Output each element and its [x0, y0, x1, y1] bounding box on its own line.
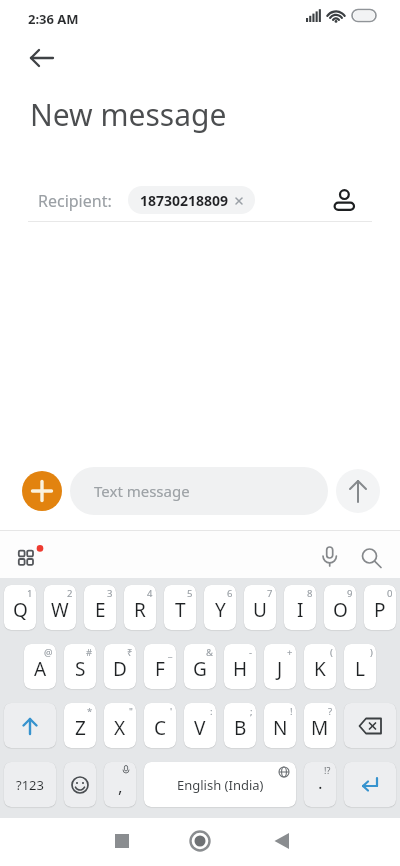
button[interactable]: X — [104, 703, 136, 748]
staticText: L — [355, 656, 365, 682]
button[interactable]: R — [124, 585, 156, 630]
staticText: C — [154, 715, 167, 741]
button[interactable]: A — [24, 644, 56, 689]
staticText: ) — [370, 646, 373, 659]
button[interactable]: T — [164, 585, 196, 630]
button[interactable]: English (India) — [144, 762, 296, 807]
button[interactable] — [322, 543, 348, 569]
staticText: : — [210, 705, 213, 718]
staticText: A — [34, 656, 47, 682]
staticText: U — [253, 597, 267, 623]
staticText: . — [318, 771, 323, 794]
button[interactable] — [4, 703, 56, 748]
staticText: _ — [168, 646, 173, 659]
button[interactable]: , — [104, 762, 136, 807]
button[interactable] — [359, 545, 385, 571]
button[interactable] — [268, 827, 296, 855]
button[interactable]: S — [64, 644, 96, 689]
staticText: 2 — [67, 587, 73, 600]
button[interactable]: K — [304, 644, 336, 689]
button[interactable]: B — [224, 703, 256, 748]
staticText: ? — [328, 705, 333, 718]
staticText: 8 — [307, 587, 313, 600]
staticText: Y — [215, 597, 226, 623]
staticText: 6 — [227, 587, 233, 600]
button[interactable]: I — [284, 585, 316, 630]
button[interactable] — [64, 762, 96, 807]
button[interactable]: C — [144, 703, 176, 748]
staticText: I — [297, 597, 304, 623]
staticText: P — [374, 597, 386, 623]
staticText: 2:36 AM — [28, 10, 79, 28]
staticText: N — [273, 715, 288, 741]
staticText: D — [113, 656, 127, 682]
staticText: ( — [330, 646, 333, 659]
staticText: B — [234, 715, 247, 741]
staticText: J — [277, 656, 283, 682]
staticText: F — [155, 656, 165, 682]
button[interactable]: N — [264, 703, 296, 748]
button[interactable] — [22, 40, 62, 80]
staticText: W — [51, 597, 69, 623]
staticText: " — [129, 705, 133, 718]
staticText: Z — [75, 715, 86, 741]
staticText: ; — [250, 705, 253, 718]
button[interactable]: G — [184, 644, 216, 689]
button[interactable]: . — [304, 762, 336, 807]
button[interactable] — [332, 186, 358, 212]
button[interactable]: O — [324, 585, 356, 630]
staticText: ?123 — [16, 776, 44, 794]
button[interactable] — [18, 542, 48, 572]
button[interactable] — [344, 703, 396, 748]
staticText: T — [175, 597, 186, 623]
button[interactable]: V — [184, 703, 216, 748]
staticText: English (India) — [177, 776, 264, 794]
button[interactable]: Text message — [70, 467, 328, 515]
staticText: @ — [44, 646, 53, 659]
staticText: * — [87, 705, 93, 718]
staticText: - — [249, 646, 253, 659]
staticText: Q — [13, 597, 28, 623]
button[interactable]: E — [84, 585, 116, 630]
staticText: # — [86, 646, 93, 659]
button[interactable] — [186, 827, 214, 855]
staticText: 9 — [347, 587, 353, 600]
staticText: X — [114, 715, 126, 741]
button[interactable] — [336, 469, 380, 513]
button[interactable]: D — [104, 644, 136, 689]
staticText: New message — [30, 94, 227, 135]
button[interactable] — [22, 471, 62, 511]
button[interactable]: W — [44, 585, 76, 630]
staticText: ! — [290, 705, 293, 718]
staticText: M — [311, 715, 329, 741]
button[interactable]: 18730218809 — [128, 186, 255, 214]
button[interactable]: ?123 — [4, 762, 56, 807]
button[interactable]: Z — [64, 703, 96, 748]
button[interactable]: U — [244, 585, 276, 630]
staticText: , — [118, 775, 123, 798]
button[interactable]: H — [224, 644, 256, 689]
staticText: 18730218809 — [140, 191, 229, 210]
button[interactable]: J — [264, 644, 296, 689]
staticText: 3 — [107, 587, 113, 600]
button[interactable] — [344, 762, 396, 807]
button[interactable]: L — [344, 644, 376, 689]
staticText: K — [314, 656, 326, 682]
staticText: 5 — [187, 587, 193, 600]
staticText: R — [134, 597, 146, 623]
staticText: G — [193, 656, 207, 682]
button[interactable]: F — [144, 644, 176, 689]
button[interactable]: Q — [4, 585, 36, 630]
staticText: !? — [324, 764, 331, 776]
button[interactable]: P — [364, 585, 396, 630]
staticText: 4 — [147, 587, 153, 600]
staticText: Text message — [94, 481, 190, 501]
staticText: H — [233, 656, 248, 682]
button[interactable]: Y — [204, 585, 236, 630]
button[interactable] — [108, 827, 136, 855]
staticText: 7 — [267, 587, 273, 600]
staticText: S — [75, 656, 86, 682]
button[interactable]: M — [304, 703, 336, 748]
staticText: + — [287, 646, 293, 659]
staticText: E — [95, 597, 106, 623]
